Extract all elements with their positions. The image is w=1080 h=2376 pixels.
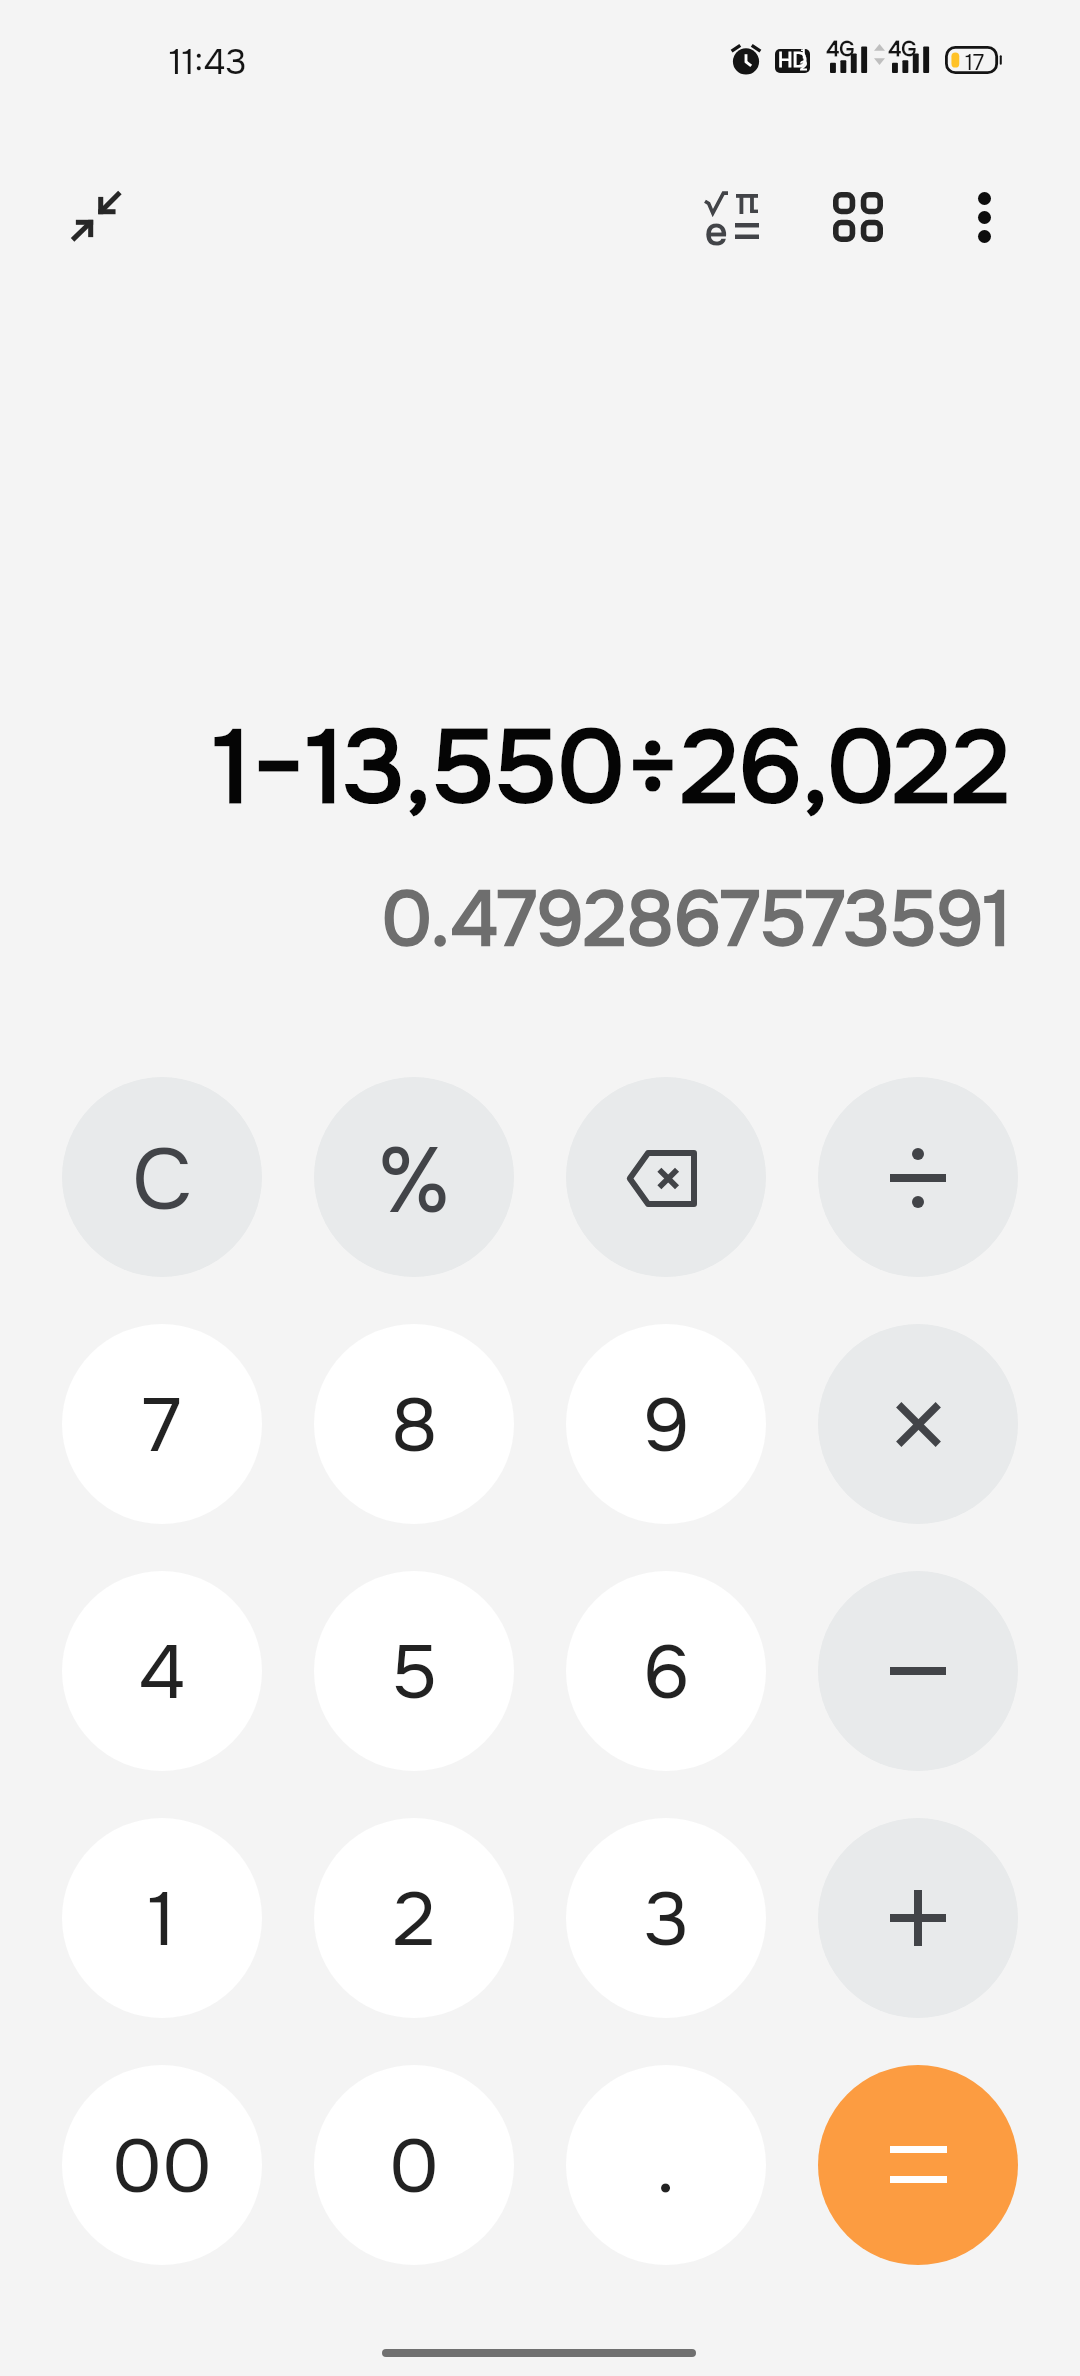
button[interactable]: 00 — [62, 2065, 262, 2265]
button[interactable]: 8 — [314, 1324, 514, 1524]
button[interactable]: Plus — [818, 1818, 1018, 2018]
button[interactable]: Divide — [818, 1077, 1018, 1277]
button[interactable]: More options — [924, 157, 1044, 277]
staticText: . — [656, 2119, 676, 2215]
button[interactable]: C — [62, 1077, 262, 1277]
staticText: 4G — [826, 36, 855, 63]
staticText: 4G — [888, 36, 917, 63]
button[interactable]: Scientific calculator — [672, 157, 792, 277]
staticText: 1−13,550÷26,022 — [213, 703, 1010, 833]
button[interactable]: 3 — [566, 1818, 766, 2018]
staticText: C — [132, 1126, 193, 1236]
button[interactable]: % — [314, 1077, 514, 1277]
button[interactable]: Collapse — [36, 156, 156, 276]
staticText: 0 — [389, 2119, 439, 2215]
staticText: 1 — [801, 49, 806, 62]
button[interactable]: 5 — [314, 1571, 514, 1771]
staticText: 7 — [143, 1378, 181, 1474]
staticText: 0.4792867573591 — [381, 871, 1011, 968]
staticText: 00 — [112, 2119, 212, 2215]
button[interactable]: 1 — [62, 1818, 262, 2018]
button[interactable]: Backspace — [566, 1077, 766, 1277]
staticText: 6 — [643, 1625, 690, 1721]
button[interactable]: Minus — [818, 1571, 1018, 1771]
button[interactable]: 7 — [62, 1324, 262, 1524]
staticText: 4 — [138, 1625, 186, 1721]
button[interactable]: . — [566, 2065, 766, 2265]
button[interactable]: Equals — [818, 2065, 1018, 2265]
button[interactable]: 6 — [566, 1571, 766, 1771]
button[interactable]: Multiply — [818, 1324, 1018, 1524]
button[interactable]: 4 — [62, 1571, 262, 1771]
staticText: HD — [778, 49, 807, 72]
staticText: 17 — [965, 49, 985, 77]
staticText: 5 — [391, 1625, 438, 1721]
staticText: 8 — [391, 1378, 438, 1474]
staticText: 11:43 — [169, 40, 247, 85]
staticText: 3 — [644, 1872, 689, 1968]
staticText: 2 — [393, 1872, 436, 1968]
staticText: 1 — [148, 1872, 176, 1968]
button[interactable]: 0 — [314, 2065, 514, 2265]
staticText: % — [377, 1123, 451, 1240]
button[interactable]: Unit converter — [798, 157, 918, 277]
staticText: 9 — [643, 1378, 690, 1474]
staticText: e — [705, 207, 728, 257]
button[interactable]: 2 — [314, 1818, 514, 2018]
staticText: 2 — [800, 57, 808, 73]
button[interactable]: 9 — [566, 1324, 766, 1524]
